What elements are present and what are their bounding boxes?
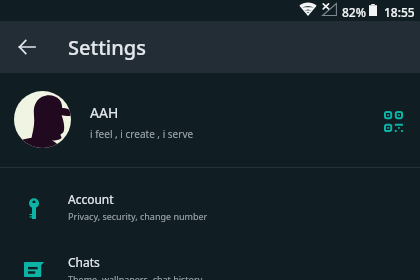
staticText: 18:55 <box>384 4 415 20</box>
button[interactable]: Chats <box>0 240 420 280</box>
button[interactable]: Account <box>0 177 420 240</box>
staticText: Chats <box>68 254 100 270</box>
staticText: i feel , i create , i serve <box>90 127 194 141</box>
staticText: Privacy, security, change number <box>68 210 208 222</box>
staticText: Settings <box>68 34 146 61</box>
button[interactable]: AAH <box>0 73 420 166</box>
staticText: 82% <box>342 4 366 20</box>
button[interactable]: Back <box>8 28 46 66</box>
staticText: Theme, wallpapers, chat history <box>68 273 203 280</box>
staticText: AAH <box>90 103 119 122</box>
staticText: Account <box>68 191 114 207</box>
button[interactable]: QR code <box>378 105 408 135</box>
